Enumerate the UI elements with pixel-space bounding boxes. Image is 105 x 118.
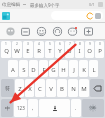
staticText: L [92,66,96,74]
staticText: O [87,47,92,55]
staticText: 最多输入9个字 [30,2,60,8]
staticText: S [22,66,26,74]
staticText: B [60,85,64,93]
button[interactable]: Emoji [34,24,48,38]
button[interactable]: Add [81,24,95,38]
button[interactable]: Comma [28,99,38,117]
staticText: 信息编辑 [2,2,20,8]
staticText: N [71,85,76,93]
staticText: U [67,47,72,55]
staticText: 4 [38,42,40,46]
button[interactable]: 0 [95,41,104,58]
staticText: T [48,47,52,55]
staticText: 123 [17,105,25,111]
staticText: Q [4,47,9,55]
button[interactable]: 9 [85,41,94,58]
staticText: 符 [5,85,10,91]
staticText: 5 [49,42,51,46]
button[interactable]: M [79,79,89,97]
button[interactable]: 8 [75,41,84,58]
button[interactable]: Image [2,12,10,20]
button[interactable]: 4 [34,41,44,58]
button[interactable]: X [25,79,34,97]
button[interactable]: 6 [55,41,64,58]
staticText: 9 [89,42,91,46]
button[interactable]: Backspace [90,79,104,97]
staticText: 8 [79,42,81,46]
staticText: Z [18,85,22,93]
button[interactable]: 7 [65,41,74,58]
staticText: V [49,85,53,93]
staticText: 7 [69,42,71,46]
button[interactable]: N [68,79,78,97]
button[interactable]: F [39,60,48,77]
staticText: 0/1 [89,2,95,7]
button[interactable]: V [46,79,56,97]
button[interactable]: G [49,60,58,77]
staticText: K [82,66,86,74]
staticText: 6 [59,42,61,46]
button[interactable]: Recent [3,24,17,38]
staticText: C [38,85,42,93]
staticText: E [26,47,30,55]
button[interactable]: L [89,60,98,77]
button[interactable]: 2 [12,41,22,58]
staticText: I [78,47,81,55]
staticText: 2 [16,42,18,46]
button[interactable]: Space [39,99,70,117]
button[interactable]: Symbols [1,79,14,97]
button[interactable]: A [8,60,18,77]
button[interactable]: C [35,79,45,97]
staticText: , [32,105,34,112]
staticText: D [31,66,36,74]
staticText: 3 [27,42,29,46]
button[interactable]: Numbers [14,99,27,117]
staticText: A [11,66,15,74]
staticText: 中 [5,105,10,111]
button[interactable]: Period [71,99,81,117]
staticText: M [81,85,87,93]
button[interactable]: D [29,60,38,77]
button[interactable]: Enter [82,99,104,117]
staticText: F [42,66,46,74]
button[interactable]: 3 [23,41,33,58]
button[interactable]: H [59,60,68,77]
button[interactable]: Z [15,79,24,97]
staticText: 0 [99,42,101,46]
button[interactable] [51,11,103,20]
staticText: 空格 [89,106,97,111]
staticText: . [75,105,77,112]
button[interactable]: K [79,60,88,77]
staticText: R [37,47,41,55]
button[interactable]: Stickers [18,24,32,38]
button[interactable]: 5 [45,41,54,58]
button[interactable]: J [69,60,78,77]
button[interactable]: Chinese English toggle [1,99,13,117]
button[interactable]: 1 [1,41,11,58]
staticText: Y [58,47,62,55]
staticText: H [61,66,66,74]
button[interactable]: S [19,60,28,77]
staticText: P [98,47,102,55]
staticText: J [73,66,75,74]
button[interactable]: Favorites [65,24,79,38]
staticText: G [51,66,56,74]
button[interactable]: Effects [50,24,64,38]
button[interactable]: B [57,79,67,97]
staticText: 1 [5,42,7,46]
staticText: W [14,47,20,55]
staticText: X [28,85,32,93]
